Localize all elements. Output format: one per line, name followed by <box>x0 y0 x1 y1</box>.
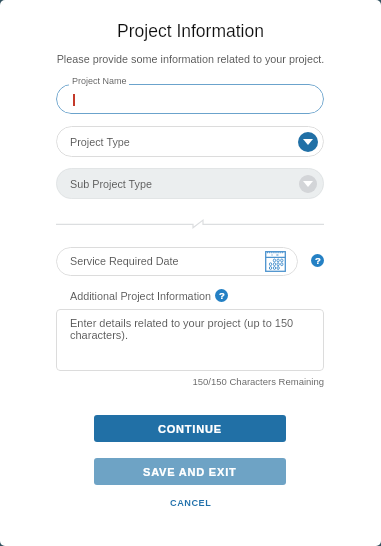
button[interactable]: Service Required Date <box>56 247 298 276</box>
other: Open Sub Project Type list <box>299 175 317 193</box>
staticText: Additional Project Information <box>70 290 212 302</box>
staticText: Sub Project Type <box>70 178 153 190</box>
staticText: Enter details related to your project (u… <box>70 317 294 341</box>
other: Pick date <box>265 251 286 272</box>
staticText: Project Type <box>70 136 130 148</box>
other: Help <box>311 254 324 267</box>
staticText: Project Name <box>72 76 127 86</box>
button[interactable]: CANCEL <box>0 493 381 513</box>
staticText: ? <box>315 255 321 266</box>
button[interactable]: Project Type <box>56 126 324 157</box>
staticText: SAVE AND EXIT <box>143 466 237 478</box>
staticText: CANCEL <box>170 498 212 508</box>
button[interactable]: SAVE AND EXIT <box>94 458 286 485</box>
button[interactable]: Sub Project Type <box>56 168 324 199</box>
staticText: Please provide some information related … <box>0 53 381 65</box>
staticText: Project Information <box>0 21 381 41</box>
staticText: CONTINUE <box>158 423 222 435</box>
button[interactable] <box>56 84 324 114</box>
staticText: ? <box>219 290 225 301</box>
other: Open Project Type list <box>298 132 318 152</box>
staticText: 150/150 Characters Remaining <box>0 376 324 387</box>
staticText: Service Required Date <box>70 255 179 267</box>
button[interactable]: CONTINUE <box>94 415 286 442</box>
other: Help <box>215 289 228 302</box>
button[interactable]: Enter details related to your project (u… <box>56 309 324 371</box>
